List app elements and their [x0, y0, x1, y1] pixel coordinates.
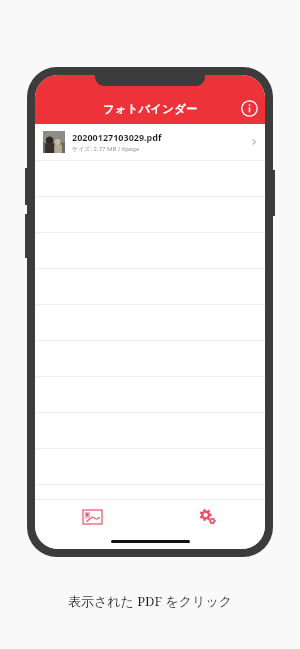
staticText: サイズ: 2.77 MB / 6page [72, 145, 140, 153]
button[interactable]: Photos [35, 500, 150, 534]
staticText: 表示された PDF をクリック [0, 592, 300, 610]
button[interactable]: Information [237, 96, 261, 120]
staticText: 20200127103029.pdf [72, 131, 162, 143]
button[interactable]: Settings [150, 500, 265, 534]
button[interactable]: 20200127103029.pdf [35, 124, 265, 160]
staticText: フォトバインダー [103, 102, 198, 116]
